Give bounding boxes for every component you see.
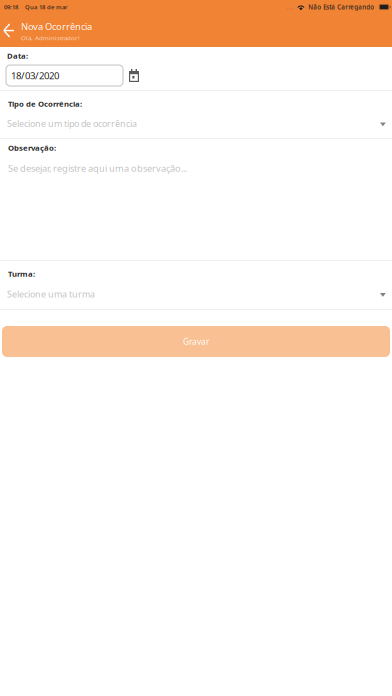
staticText: Observação:: [8, 142, 56, 153]
staticText: Nova Ocorrência: [21, 20, 92, 33]
button[interactable]: Gravar: [0, 326, 392, 357]
staticText: Se desejar, registre aqui uma observação…: [8, 162, 187, 174]
button[interactable]: Escolher data: [123, 65, 145, 86]
button[interactable]: Selecione uma turma: [0, 279, 392, 309]
staticText: Data:: [7, 50, 28, 61]
staticText: Selecione um tipo de ocorrência: [7, 117, 137, 130]
button[interactable]: Selecione um tipo de ocorrência: [0, 109, 392, 138]
button[interactable]: Voltar: [0, 14, 21, 47]
staticText: Tipo de Ocorrência:: [8, 98, 82, 109]
staticText: Qua 18 de mar: [25, 3, 67, 11]
staticText: 09:18: [4, 3, 18, 11]
button[interactable]: Se desejar, registre aqui uma observação…: [0, 153, 392, 260]
staticText: Selecione uma turma: [7, 288, 95, 300]
staticText: ....: [286, 3, 294, 11]
staticText: Não Está Carregando: [308, 3, 374, 11]
staticText: Turma:: [8, 268, 35, 279]
staticText: Gravar: [183, 336, 209, 347]
staticText: Olá, Administrador!: [21, 34, 80, 42]
staticText: 18/03/2020: [11, 69, 59, 82]
